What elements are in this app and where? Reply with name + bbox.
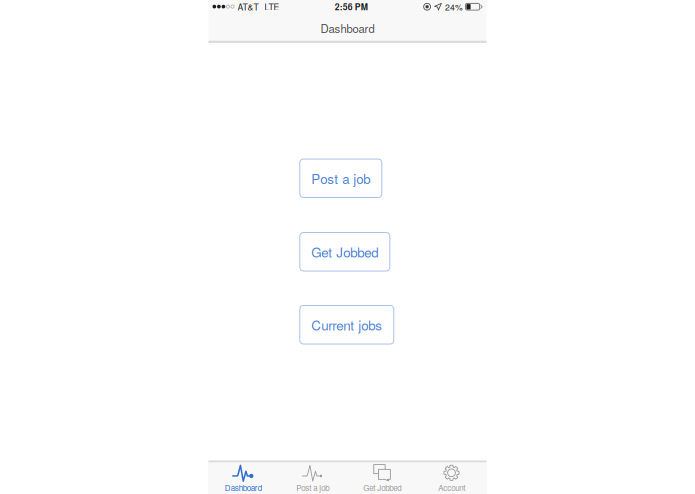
staticText: Dashboard (225, 482, 262, 493)
button[interactable]: Dashboard (208, 461, 278, 494)
staticText: Current jobs (311, 315, 382, 334)
staticText: Get Jobbed (311, 242, 378, 261)
staticText: Account (438, 482, 465, 493)
staticText: LTE (264, 0, 279, 13)
staticText: Get Jobbed (363, 482, 401, 493)
staticText: Post a job (311, 169, 370, 188)
staticText: Post a job (296, 482, 329, 493)
button[interactable]: Post a job (300, 159, 382, 197)
staticText: 2:56 PM (335, 0, 368, 13)
button[interactable]: Get Jobbed (300, 232, 390, 271)
staticText: AT&T (237, 0, 258, 13)
button[interactable]: Post a job (278, 461, 347, 494)
button[interactable]: Get Jobbed (347, 461, 417, 494)
staticText: 24% (445, 0, 463, 13)
button[interactable]: Current jobs (300, 305, 394, 344)
button[interactable]: Account (417, 461, 486, 494)
staticText: Dashboard (320, 20, 374, 36)
